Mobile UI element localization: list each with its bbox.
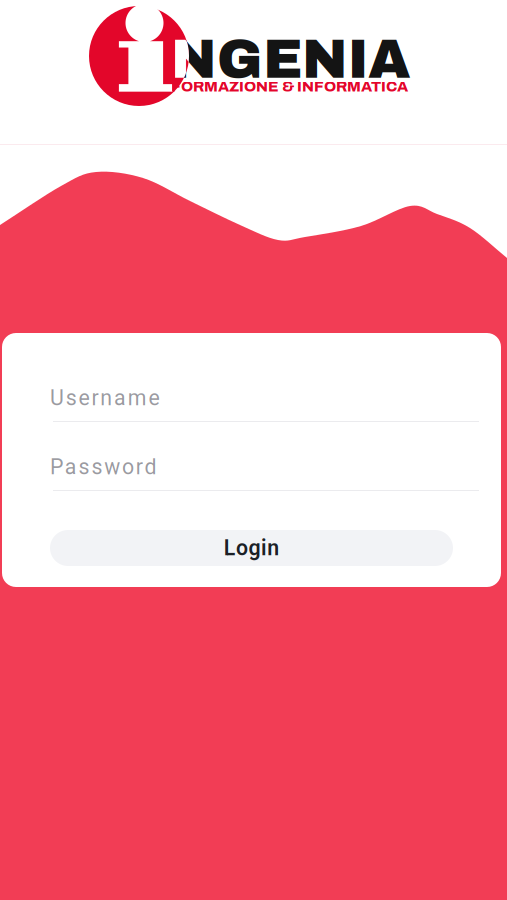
staticText: FORMAZIONE & INFORMATICA	[171, 79, 408, 94]
staticText: Username	[50, 385, 160, 410]
staticText: Login	[224, 535, 279, 560]
staticText: Password	[50, 454, 157, 479]
staticText: NGENIA	[171, 30, 411, 89]
button[interactable]: Login	[50, 530, 453, 566]
staticText: NGENIA	[171, 30, 411, 89]
